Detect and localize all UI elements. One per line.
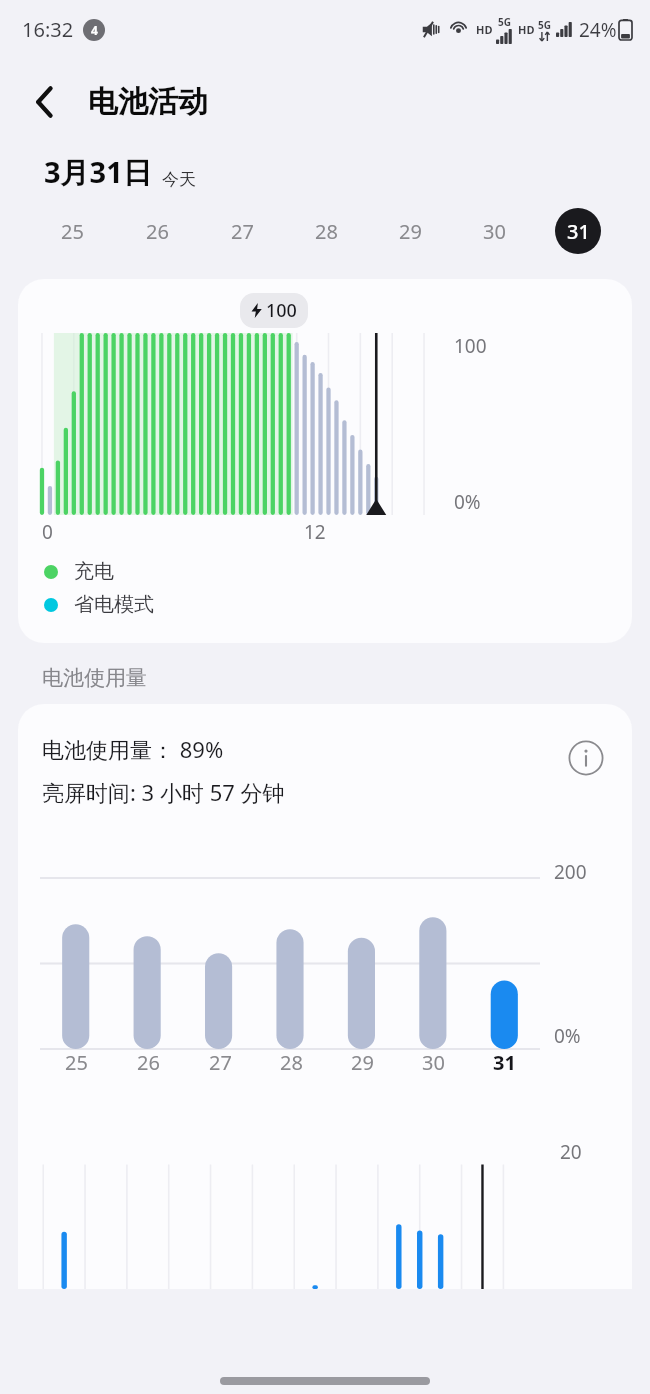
staticText: 31	[567, 218, 590, 245]
staticText: 30	[422, 1049, 445, 1076]
staticText: 电池活动	[88, 83, 208, 121]
staticText: 200	[554, 859, 587, 885]
staticText: 100	[266, 298, 297, 323]
staticText: 0	[42, 519, 53, 545]
button[interactable]: 29	[368, 201, 452, 261]
staticText: 省电模式	[74, 592, 154, 617]
button[interactable]: 28	[284, 201, 368, 261]
staticText: 今天	[162, 169, 196, 190]
staticText: 0%	[554, 1023, 581, 1049]
staticText: 亮屏时间: 3 小时 57 分钟	[42, 777, 285, 807]
staticText: 电池使用量	[42, 665, 147, 691]
button[interactable]: 30	[452, 201, 536, 261]
staticText: 29	[351, 1049, 374, 1076]
staticText: 3月31日	[44, 152, 152, 192]
staticText: 20	[560, 1139, 582, 1165]
staticText: 28	[315, 218, 338, 245]
staticText: 25	[65, 1049, 88, 1076]
button[interactable]: 27	[200, 201, 284, 261]
staticText: 5G	[538, 18, 551, 32]
button[interactable]: Back	[18, 75, 72, 129]
staticText: 5G	[498, 15, 511, 29]
staticText: 31	[493, 1049, 516, 1076]
button[interactable]: Info	[564, 736, 608, 780]
staticText: 电池使用量： 89%	[42, 734, 224, 764]
staticText: 4	[91, 22, 98, 38]
button[interactable]: 25	[30, 201, 115, 261]
staticText: 26	[137, 1049, 160, 1076]
staticText: 26	[146, 218, 169, 245]
staticText: 27	[231, 218, 254, 245]
staticText: 27	[209, 1049, 232, 1076]
staticText: 16:32	[22, 16, 74, 43]
staticText: 0%	[454, 489, 481, 515]
button[interactable]: 31	[536, 201, 620, 261]
staticText: 24%	[579, 17, 617, 43]
staticText: 30	[483, 218, 506, 245]
staticText: 100	[454, 333, 487, 359]
staticText: 12	[304, 519, 326, 545]
staticText: 充电	[74, 559, 114, 584]
staticText: HD	[518, 22, 535, 37]
staticText: 25	[61, 218, 84, 245]
button[interactable]: 26	[115, 201, 200, 261]
staticText: HD	[476, 22, 493, 37]
staticText: 28	[280, 1049, 303, 1076]
staticText: 29	[399, 218, 422, 245]
